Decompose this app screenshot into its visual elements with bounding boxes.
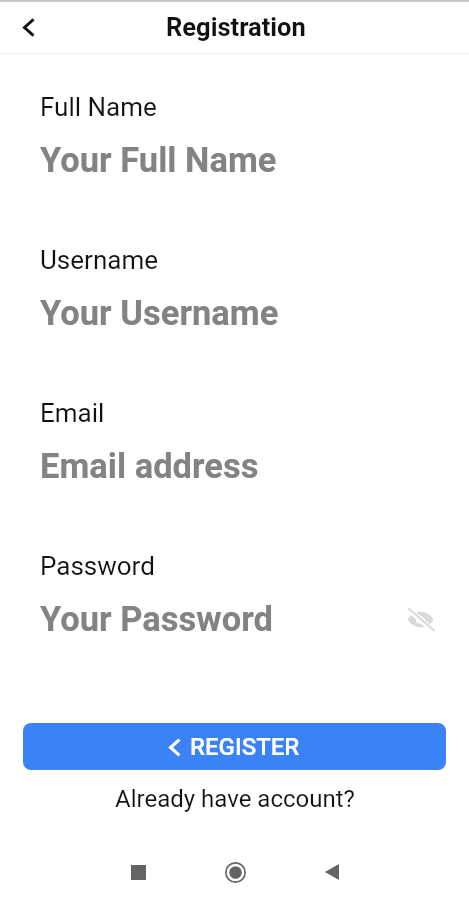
staticText: Your Username — [40, 293, 429, 333]
button[interactable]: Home — [211, 848, 259, 896]
staticText: REGISTER — [190, 733, 300, 761]
staticText: Your Password — [40, 599, 391, 639]
button[interactable]: Back — [7, 5, 51, 49]
staticText: Email — [40, 398, 105, 428]
staticText: Registration — [166, 12, 306, 42]
staticText: Username — [40, 245, 158, 275]
staticText: Email address — [40, 446, 429, 486]
staticText: Password — [40, 551, 155, 581]
button[interactable]: Already have account? — [23, 785, 446, 813]
button[interactable]: REGISTER — [23, 723, 446, 770]
button[interactable]: Recent apps — [114, 848, 162, 896]
staticText: Full Name — [40, 92, 157, 122]
staticText: Already have account? — [115, 785, 355, 813]
staticText: Your Full Name — [40, 140, 429, 180]
button[interactable]: Show password — [401, 600, 439, 638]
button[interactable]: Back — [308, 848, 356, 896]
